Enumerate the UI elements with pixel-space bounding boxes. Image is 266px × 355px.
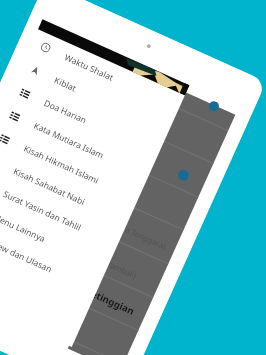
staticText: Review dan Ulasan bbox=[0, 234, 54, 275]
staticText: etinggian bbox=[89, 287, 136, 318]
staticText: Kisah Sahabat Nabi bbox=[11, 165, 87, 208]
staticText: lambali) bbox=[107, 259, 138, 282]
staticText: Kiblat bbox=[52, 74, 78, 94]
staticText: Menu Lainnya bbox=[0, 211, 48, 245]
button[interactable]: Kisah Sahabat Nabi bbox=[0, 144, 133, 233]
button[interactable]: Kata Mutiara Islam bbox=[0, 99, 154, 187]
button[interactable]: Waktu Shalat bbox=[27, 30, 184, 119]
staticText: Surat Yasin dan Tahlil bbox=[1, 188, 84, 234]
staticText: Kata Mutiara Islam bbox=[32, 120, 106, 162]
button[interactable]: Pilih lokasi bbox=[207, 100, 220, 113]
staticText: Waktu Shalat bbox=[63, 51, 116, 84]
staticText: Kisah Hikmah Islami bbox=[22, 143, 101, 187]
button[interactable]: Surat Yasin dan Tahlil bbox=[0, 167, 123, 256]
button[interactable]: Menu Lainnya bbox=[0, 190, 113, 279]
button[interactable]: Kiblat bbox=[17, 53, 174, 142]
staticText: Doa Harian bbox=[42, 97, 89, 127]
button[interactable]: Doa Harian bbox=[7, 76, 164, 165]
button[interactable]: Kisah Hikmah Islami bbox=[0, 121, 143, 210]
button[interactable]: Review dan Ulasan bbox=[0, 213, 102, 301]
staticText: a Tenggara) bbox=[123, 224, 168, 252]
button[interactable]: Pilih lokasi bbox=[176, 168, 191, 182]
